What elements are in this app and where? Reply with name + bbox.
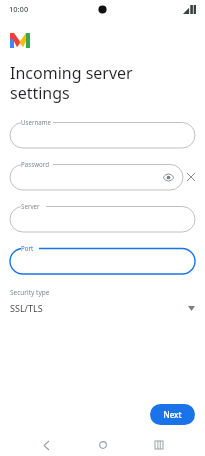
staticText: Security type bbox=[10, 288, 50, 297]
staticText: Port bbox=[21, 244, 34, 252]
staticText: Password bbox=[21, 160, 49, 168]
button[interactable]: Password bbox=[10, 160, 183, 190]
staticText: 10:00 bbox=[9, 4, 29, 14]
staticText: Server bbox=[21, 202, 40, 210]
staticText: SSL/TLS bbox=[10, 302, 188, 314]
button[interactable]: Next bbox=[150, 404, 195, 425]
button[interactable]: Username bbox=[10, 118, 195, 148]
button[interactable]: Port bbox=[10, 244, 195, 274]
button[interactable]: Recent apps bbox=[148, 434, 170, 456]
button[interactable]: Server bbox=[10, 202, 195, 232]
button[interactable]: Show password bbox=[161, 170, 175, 184]
staticText: Incoming server settings bbox=[10, 62, 133, 103]
staticText: Next bbox=[163, 409, 182, 420]
staticText: Username bbox=[21, 118, 52, 126]
button[interactable]: Security type bbox=[0, 288, 205, 314]
button[interactable]: Back bbox=[35, 434, 57, 456]
button[interactable]: Home bbox=[92, 434, 114, 456]
button[interactable]: Clear password bbox=[183, 169, 199, 185]
